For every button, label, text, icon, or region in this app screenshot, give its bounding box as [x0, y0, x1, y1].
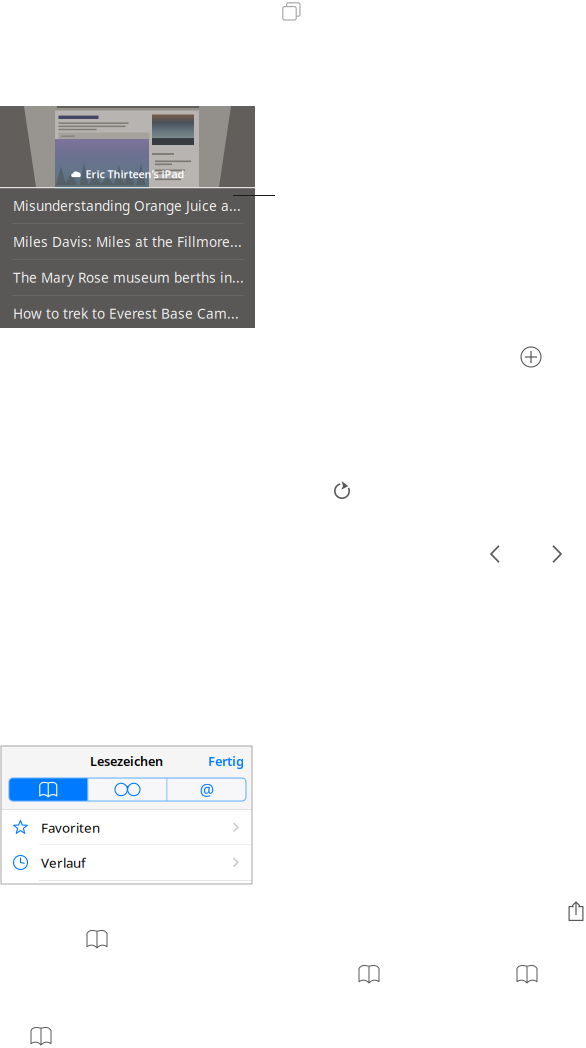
button[interactable]: Bookmarks	[83, 925, 111, 953]
staticText: Favoriten	[41, 818, 100, 837]
staticText: Verlauf	[41, 853, 86, 872]
button[interactable]: Bookmarks	[355, 960, 383, 988]
staticText: Eric Thirteen's iPad	[85, 167, 184, 181]
button[interactable]: Fertig	[192, 747, 244, 775]
staticText: Miles Davis: Miles at the Fillmore...	[13, 232, 242, 251]
button[interactable]: Back	[482, 540, 508, 568]
button[interactable]: The Mary Rose museum berths in...	[0, 260, 255, 295]
button[interactable]: Verlauf	[1, 845, 252, 880]
button[interactable]: Share	[563, 897, 586, 925]
button[interactable]: Bookmarks	[27, 1022, 55, 1048]
staticText: Misunderstanding Orange Juice a...	[13, 196, 241, 215]
button[interactable]	[9, 778, 87, 801]
staticText: Fertig	[208, 752, 244, 770]
button[interactable]: Tabs	[275, 0, 303, 23]
staticText: How to trek to Everest Base Cam...	[13, 304, 239, 323]
button[interactable]: Favoriten	[1, 810, 252, 845]
staticText: Lesezeichen	[90, 752, 163, 770]
button[interactable]: New Tab	[516, 342, 546, 372]
button[interactable]	[88, 778, 166, 801]
button[interactable]: Misunderstanding Orange Juice a...	[0, 188, 255, 223]
button[interactable]: Reload	[328, 477, 356, 505]
button[interactable]: Forward	[544, 540, 570, 568]
button[interactable]: Miles Davis: Miles at the Fillmore...	[0, 224, 255, 259]
button[interactable]: How to trek to Everest Base Cam...	[0, 296, 255, 331]
staticText: @	[200, 779, 214, 800]
button[interactable]: Bookmarks	[513, 960, 541, 988]
button[interactable]: @	[167, 778, 246, 801]
staticText: The Mary Rose museum berths in...	[13, 268, 244, 287]
